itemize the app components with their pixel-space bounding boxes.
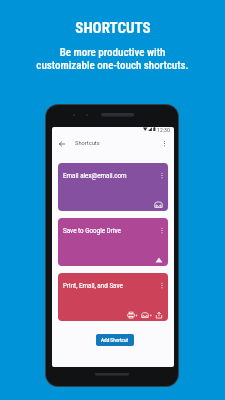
button[interactable]: Save to Google Drive bbox=[58, 218, 168, 266]
staticText: Print, Email, and Save bbox=[63, 282, 123, 289]
button[interactable]: Add Shortcut bbox=[96, 334, 134, 346]
button[interactable]: More options bbox=[159, 138, 170, 149]
staticText: Add Shortcut bbox=[101, 338, 129, 343]
staticText: Shortcuts bbox=[75, 140, 100, 147]
staticText: 12:30 bbox=[157, 127, 170, 133]
staticText: SHORTCUTS bbox=[75, 19, 151, 37]
staticText: Email alex@email.com bbox=[63, 172, 127, 179]
staticText: Save to Google Drive bbox=[63, 227, 121, 234]
button[interactable]: Back bbox=[56, 138, 67, 149]
button[interactable]: Print, Email, and Save bbox=[58, 273, 168, 321]
button[interactable]: Email alex@email.com bbox=[58, 163, 168, 211]
staticText: Be more productive with customizable one… bbox=[36, 46, 189, 72]
